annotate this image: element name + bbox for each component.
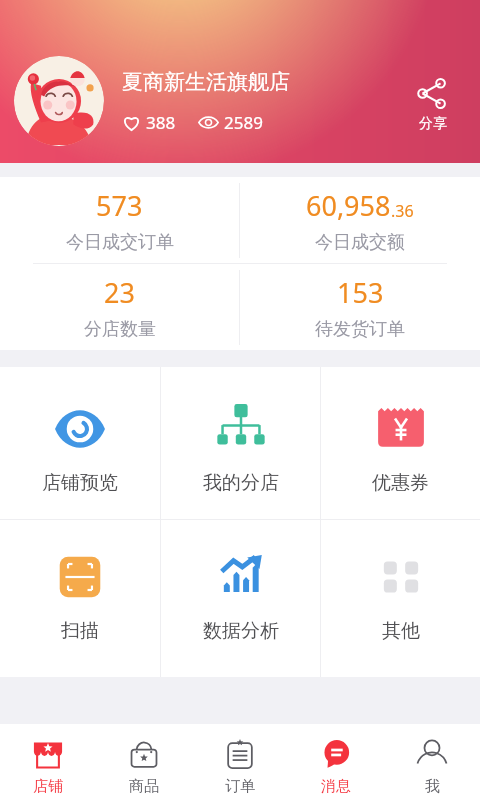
button[interactable]: 订单 bbox=[192, 724, 288, 800]
staticText: 23 bbox=[104, 274, 135, 311]
button[interactable]: 商品 bbox=[96, 724, 192, 800]
button[interactable]: 优惠券 bbox=[321, 367, 480, 519]
staticText: 我 bbox=[425, 777, 440, 796]
staticText: 388 bbox=[146, 111, 176, 134]
button[interactable]: 573 bbox=[0, 177, 239, 263]
staticText: 优惠券 bbox=[372, 471, 429, 495]
staticText: .36 bbox=[391, 200, 414, 222]
button[interactable]: 店铺预览 bbox=[0, 367, 160, 519]
staticText: 扫描 bbox=[61, 619, 99, 643]
button[interactable]: 我的分店 bbox=[161, 367, 320, 519]
button[interactable]: 店铺 bbox=[0, 724, 96, 800]
button[interactable]: 消息 bbox=[288, 724, 384, 800]
button[interactable]: 60,958 bbox=[240, 177, 480, 263]
staticText: 其他 bbox=[382, 619, 420, 643]
button[interactable]: 153 bbox=[240, 264, 480, 350]
staticText: 153 bbox=[337, 274, 384, 311]
staticText: 店铺 bbox=[33, 777, 63, 796]
staticText: 2589 bbox=[224, 111, 263, 134]
staticText: 店铺预览 bbox=[42, 471, 118, 495]
staticText: 我的分店 bbox=[203, 471, 279, 495]
staticText: 订单 bbox=[225, 777, 255, 796]
button[interactable]: Share bbox=[409, 68, 466, 135]
button[interactable]: 我 bbox=[384, 724, 480, 800]
staticText: 60,958 bbox=[306, 187, 391, 224]
staticText: 商品 bbox=[129, 777, 159, 796]
staticText: 今日成交订单 bbox=[66, 231, 174, 254]
button[interactable]: 数据分析 bbox=[161, 520, 320, 677]
staticText: 573 bbox=[96, 187, 143, 224]
button[interactable]: Shop avatar bbox=[14, 56, 104, 146]
staticText: 分享 bbox=[419, 115, 447, 133]
button[interactable]: 其他 bbox=[321, 520, 480, 677]
staticText: 分店数量 bbox=[84, 318, 156, 341]
staticText: 待发货订单 bbox=[315, 318, 405, 341]
staticText: 夏商新生活旗舰店 bbox=[122, 69, 290, 95]
staticText: 消息 bbox=[321, 777, 351, 796]
staticText: 数据分析 bbox=[203, 619, 279, 643]
button[interactable]: 扫描 bbox=[0, 520, 160, 677]
button[interactable]: 23 bbox=[0, 264, 239, 350]
staticText: 今日成交额 bbox=[315, 231, 405, 254]
